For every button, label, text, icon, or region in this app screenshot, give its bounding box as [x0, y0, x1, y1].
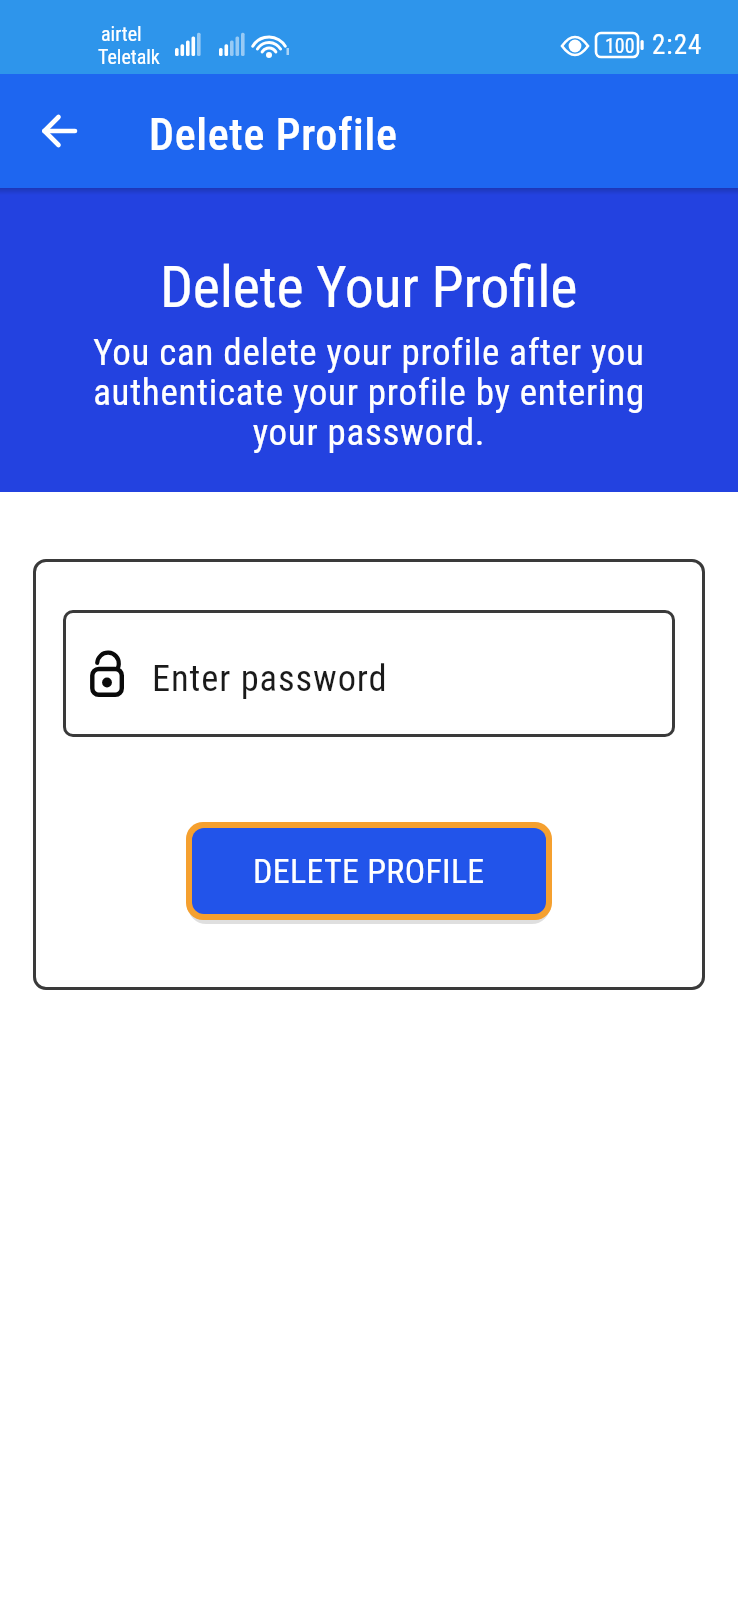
staticText: 2:24 [652, 29, 703, 61]
staticText: Teletalk [98, 45, 160, 68]
staticText: Delete Profile [149, 109, 398, 161]
staticText: Enter password [152, 657, 388, 700]
staticText: You can delete your profile after you au… [93, 331, 645, 454]
button[interactable]: Enter password [63, 610, 675, 737]
staticText: DELETE PROFILE [253, 851, 485, 891]
staticText: Delete Your Profile [160, 253, 578, 321]
button[interactable] [43, 114, 77, 148]
button[interactable]: DELETE PROFILE [186, 822, 552, 920]
staticText: airtel [101, 22, 142, 45]
staticText: 100 [605, 34, 635, 57]
